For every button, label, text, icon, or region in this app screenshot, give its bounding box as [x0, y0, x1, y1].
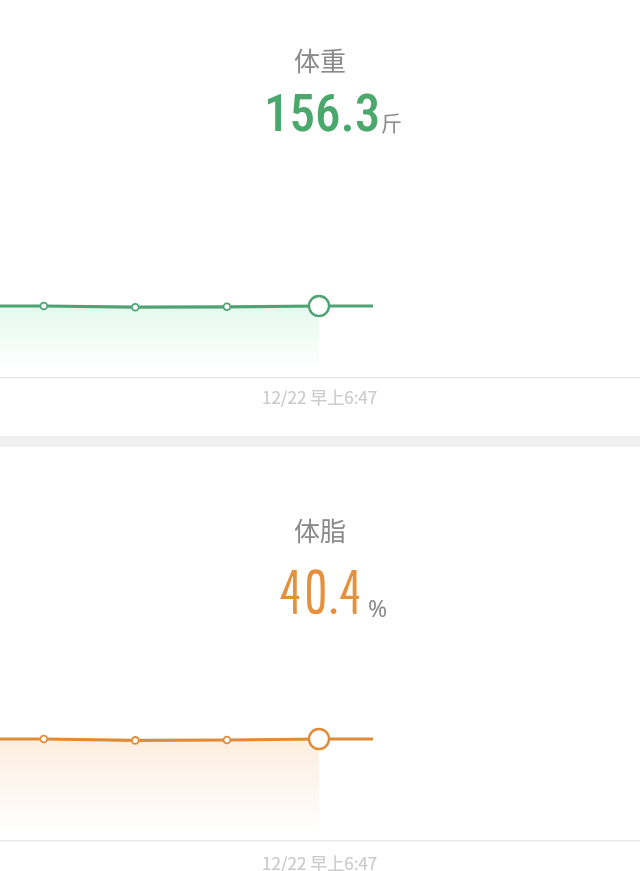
button[interactable]: Weight trend card	[0, 0, 640, 436]
staticText: 156.3	[264, 84, 381, 144]
staticText: %	[368, 592, 388, 623]
staticText: 12/22 早上6:47	[262, 850, 378, 871]
staticText: 12/22 早上6:47	[262, 384, 378, 409]
staticText: 体重	[294, 41, 347, 79]
staticText: 斤	[381, 107, 402, 137]
staticText: 40.4	[279, 557, 364, 626]
staticText: 体脂	[294, 511, 347, 549]
button[interactable]: Body fat trend card	[0, 447, 640, 871]
